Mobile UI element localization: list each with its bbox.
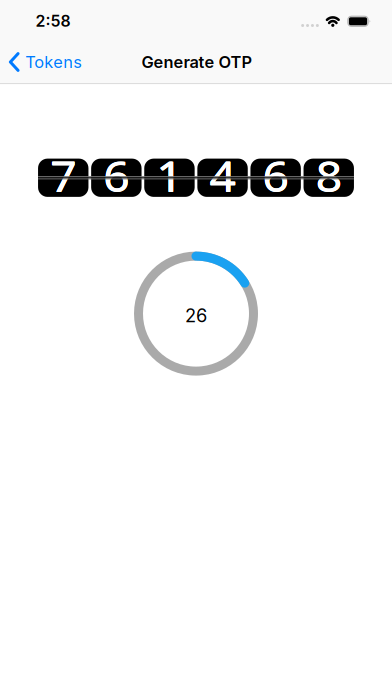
staticText: 1	[156, 144, 183, 208]
staticText: 6	[262, 144, 289, 208]
staticText: 1	[156, 144, 183, 207]
staticText: 4	[209, 144, 236, 208]
staticText: 7	[50, 144, 77, 208]
staticText: 4	[209, 144, 236, 207]
staticText: 6	[263, 144, 290, 207]
staticText: 6	[103, 144, 130, 207]
staticText: Tokens	[25, 52, 82, 72]
staticText: 7	[50, 144, 77, 207]
staticText: 8	[316, 144, 343, 208]
staticText: 6	[263, 144, 290, 208]
staticText: 6	[262, 144, 289, 207]
staticText: 8	[315, 144, 342, 208]
staticText: 6	[103, 144, 130, 207]
staticText: 8	[315, 144, 342, 207]
staticText: 2:58	[35, 11, 70, 31]
staticText: 4	[210, 144, 237, 207]
staticText: 4	[210, 144, 237, 208]
staticText: 7	[50, 144, 77, 208]
staticText: 7	[50, 144, 77, 207]
button[interactable]: Tokens	[9, 52, 82, 72]
staticText: Generate OTP	[141, 52, 252, 72]
staticText: 6	[103, 144, 130, 208]
staticText: 6	[103, 144, 130, 208]
staticText: 1	[156, 144, 183, 208]
staticText: 1	[156, 144, 183, 207]
staticText: 26	[185, 304, 207, 327]
staticText: 8	[316, 144, 343, 207]
